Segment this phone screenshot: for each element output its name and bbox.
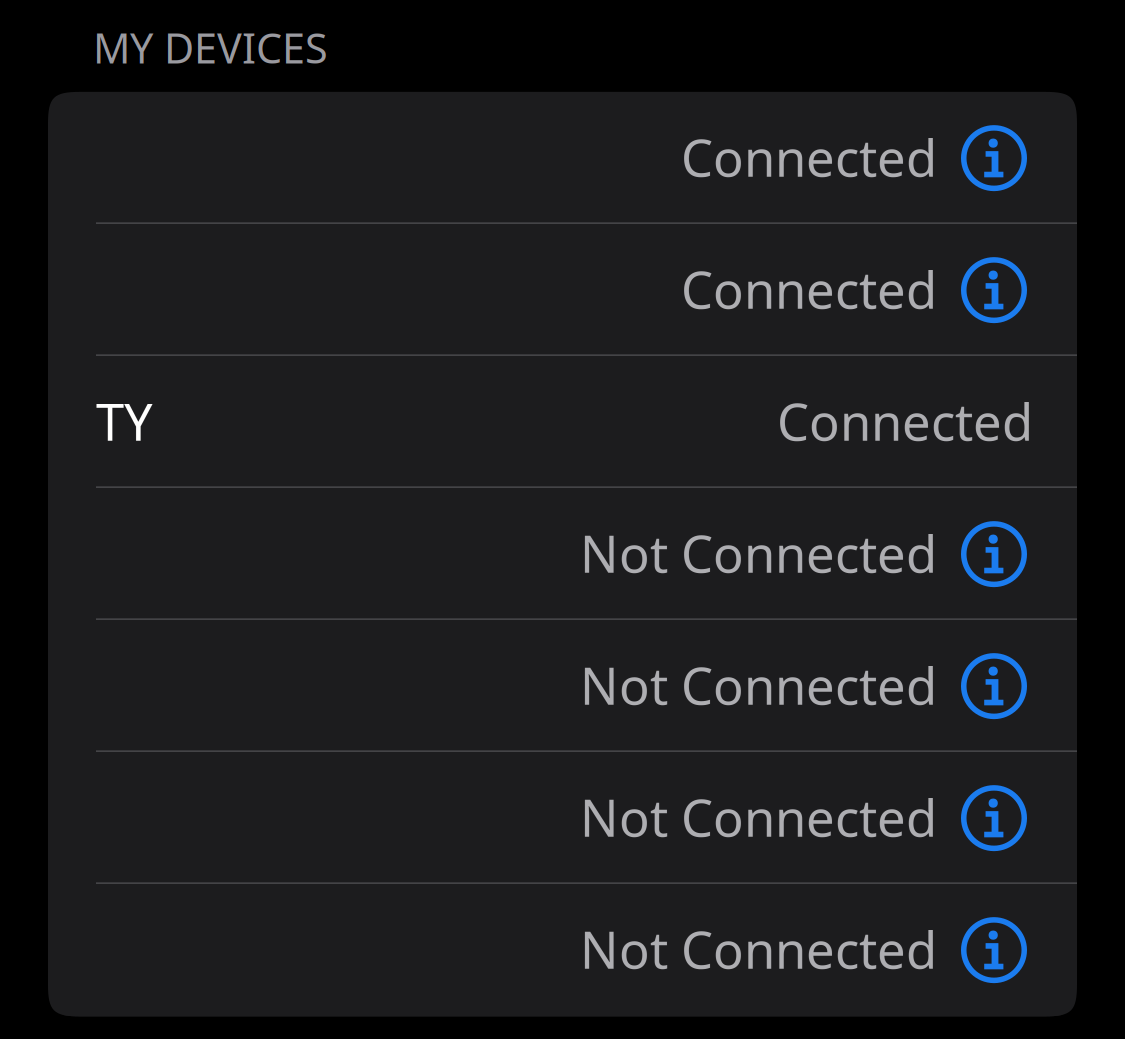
button[interactable]: More Info [937,488,1077,618]
button[interactable]: Connected [48,224,937,354]
staticText: MY DEVICES [93,20,328,75]
staticText: TY [96,387,153,455]
button[interactable]: Not Connected [48,884,937,1014]
button[interactable]: Connected [48,92,937,222]
staticText: Connected [681,123,937,191]
button[interactable]: Not Connected [48,488,937,618]
button[interactable]: More Info [937,620,1077,750]
staticText: Connected [681,255,937,323]
button[interactable]: TY, Connected [48,356,1077,486]
staticText: Not Connected [580,915,937,983]
button[interactable]: More Info [937,752,1077,882]
staticText: Not Connected [580,651,937,719]
staticText: Not Connected [580,783,937,851]
staticText: Connected [777,387,1033,455]
button[interactable]: Not Connected [48,752,937,882]
button[interactable]: More Info [937,92,1077,222]
staticText: Not Connected [580,519,937,587]
button[interactable]: Not Connected [48,620,937,750]
button[interactable]: More Info [937,884,1077,1014]
button[interactable]: More Info [937,224,1077,354]
